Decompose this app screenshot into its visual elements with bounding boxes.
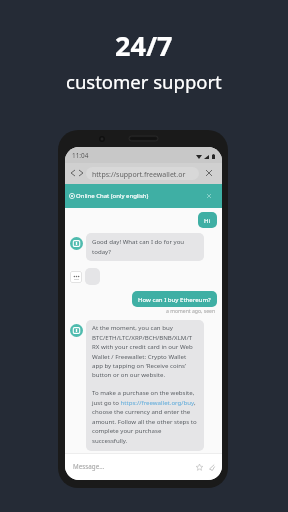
- staticText: At the moment, you can buy: [92, 323, 173, 331]
- staticText: 11:04: [72, 151, 89, 160]
- button[interactable]: How can I buy Ethereum?: [132, 291, 217, 307]
- staticText: Online Chat (only english): [76, 192, 149, 200]
- staticText: app by tapping on ‘Receive coins’: [92, 361, 186, 369]
- staticText: Message...: [73, 462, 105, 471]
- staticText: button or on our website.: [92, 370, 166, 378]
- button[interactable]: Forward: [75, 167, 86, 178]
- staticText: Good day! What can I do for you today?: [92, 237, 185, 256]
- button[interactable]: Attach file: [206, 462, 216, 472]
- button[interactable]: Close tab: [203, 167, 215, 179]
- staticText: To make a purchase on the website,: [92, 388, 195, 396]
- staticText: customer support: [66, 69, 222, 94]
- staticText: amount. Follow all the other steps to: [92, 417, 197, 425]
- staticText: BTC/ETH/LTC/XRP/BCH/BNB/XLM/T: [92, 333, 193, 341]
- staticText: Wallet / Freewallet: Crypto Wallet: [92, 352, 187, 360]
- staticText: just go to https://freewallet.org/buy,: [92, 398, 196, 406]
- staticText: How can I buy Ethereum?: [138, 295, 211, 303]
- button[interactable]: Hi: [198, 212, 217, 228]
- staticText: choose the currency and enter the: [92, 407, 191, 415]
- staticText: Hi: [204, 216, 211, 224]
- staticText: https://support.freewallet.or: [92, 170, 186, 180]
- button[interactable]: Back: [67, 167, 78, 178]
- staticText: successfully.: [92, 436, 128, 444]
- button[interactable]: Close chat: [204, 191, 214, 201]
- button[interactable]: Emoji: [194, 462, 204, 472]
- staticText: 24/7: [115, 27, 173, 64]
- staticText: a moment ago, seen: [166, 308, 216, 315]
- staticText: RX with your credit card in our Web: [92, 342, 193, 350]
- staticText: complete your purchase: [92, 426, 162, 434]
